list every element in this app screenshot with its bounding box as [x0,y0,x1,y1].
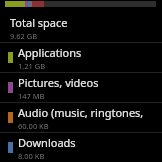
staticText: 60.00 KB [18,121,49,131]
staticText: 8.00 KB [18,151,45,161]
button[interactable]: Applications [0,43,162,72]
staticText: 1.21 GB [18,61,46,71]
staticText: 9.62 GB [10,31,38,41]
staticText: 147 MB [18,91,45,101]
staticText: Downloads [18,135,76,150]
button[interactable]: Audio (music, ringtones, podca.. [0,103,162,132]
staticText: Applications [18,45,82,60]
staticText: Total space [10,15,68,30]
button[interactable]: Total space [0,13,162,42]
button[interactable]: Pictures, videos [0,73,162,102]
staticText: Audio (music, ringtones, podca.. [18,105,156,120]
staticText: Pictures, videos [18,75,99,90]
button[interactable]: Downloads [0,133,162,162]
